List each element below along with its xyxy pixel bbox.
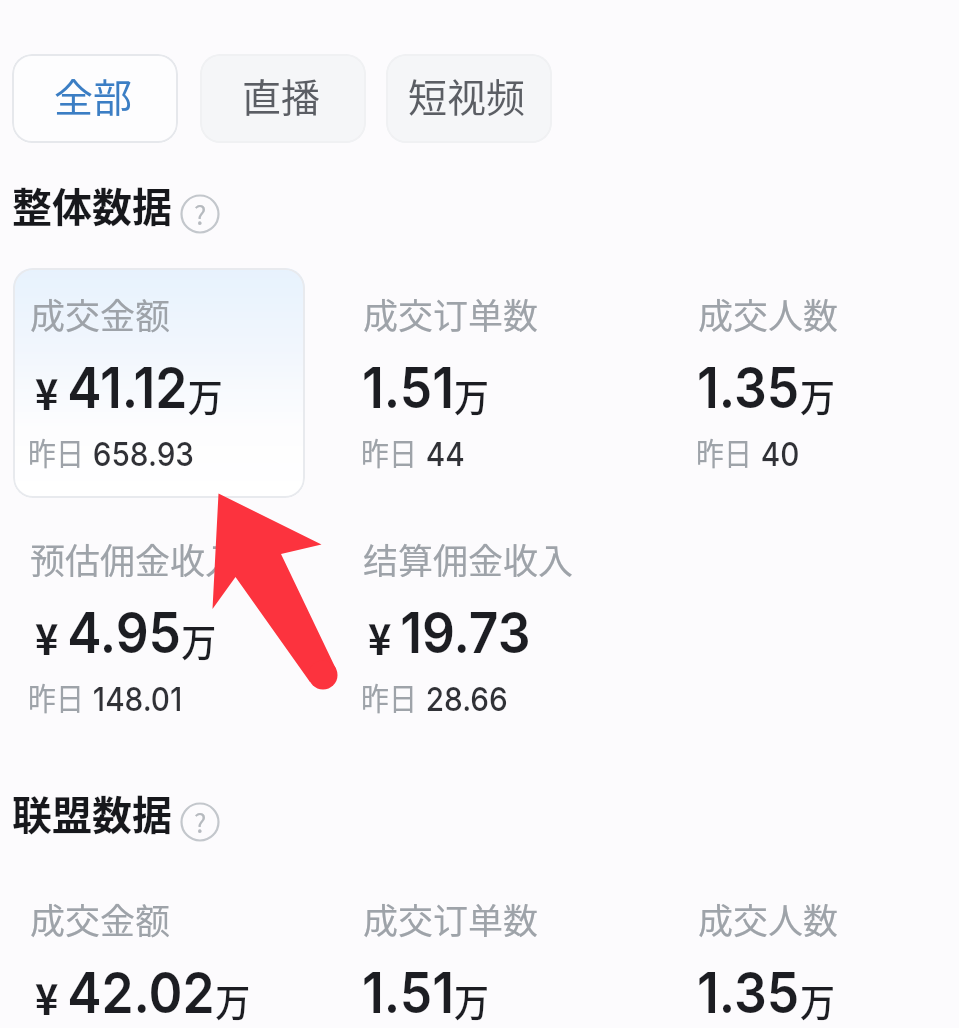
staticText: 昨日 <box>696 429 752 474</box>
button[interactable] <box>12 881 332 991</box>
button[interactable] <box>13 268 305 498</box>
button[interactable] <box>345 881 665 991</box>
button[interactable] <box>12 521 332 711</box>
staticText: 148.01 <box>93 679 183 719</box>
staticText: ¥ <box>35 605 59 667</box>
staticText: 成交人数 <box>698 893 839 944</box>
staticText: 万 <box>181 612 217 667</box>
staticText: 直播 <box>242 67 321 123</box>
staticText: 万 <box>454 972 490 1027</box>
staticText: 联盟数据 <box>12 784 172 842</box>
button[interactable] <box>345 521 665 711</box>
staticText: 成交订单数 <box>363 288 539 339</box>
staticText: 万 <box>454 367 490 422</box>
staticText: 昨日 <box>361 674 417 719</box>
staticText: 1.35 <box>697 959 800 1027</box>
staticText: 昨日 <box>361 429 417 474</box>
staticText: 4.95 <box>67 599 181 667</box>
staticText: 成交订单数 <box>363 893 539 944</box>
staticText: 整体数据 <box>12 176 172 234</box>
staticText: 成交金额 <box>30 893 171 944</box>
staticText: 658.93 <box>93 434 194 474</box>
staticText: 预估佣金收入 <box>30 533 241 584</box>
staticText: ? <box>194 803 207 841</box>
staticText: 28.66 <box>426 679 509 719</box>
button[interactable]: 整体数据 <box>12 176 172 234</box>
staticText: 44 <box>426 434 465 474</box>
staticText: 1.35 <box>697 354 800 422</box>
staticText: ? <box>194 195 207 233</box>
button[interactable] <box>12 276 332 466</box>
staticText: 万 <box>188 367 224 422</box>
staticText: 全部 <box>54 67 133 123</box>
staticText: 结算佣金收入 <box>363 533 574 584</box>
staticText: 万 <box>800 972 836 1027</box>
button[interactable]: 联盟数据 <box>12 784 172 842</box>
staticText: ¥ <box>35 965 59 1027</box>
staticText: 万 <box>215 972 251 1027</box>
button[interactable] <box>680 881 959 991</box>
staticText: ¥ <box>35 360 59 422</box>
staticText: 万 <box>800 367 836 422</box>
staticText: 42.02 <box>67 959 215 1027</box>
staticText: ¥ <box>368 605 392 667</box>
staticText: 19.73 <box>400 599 531 667</box>
staticText: 1.51 <box>362 354 454 422</box>
button[interactable]: 联盟数据说明 <box>180 802 220 842</box>
button[interactable] <box>345 276 665 466</box>
staticText: 41.12 <box>67 354 188 422</box>
staticText: 短视频 <box>408 67 526 123</box>
staticText: 昨日 <box>28 674 84 719</box>
staticText: 成交人数 <box>698 288 839 339</box>
staticText: 昨日 <box>28 429 84 474</box>
button[interactable]: 全部 <box>12 54 178 143</box>
staticText: 成交金额 <box>30 288 171 339</box>
staticText: 1.51 <box>362 959 454 1027</box>
button[interactable]: 整体数据说明 <box>180 194 220 234</box>
button[interactable]: 短视频 <box>386 54 552 143</box>
button[interactable] <box>680 276 959 466</box>
staticText: 40 <box>761 434 799 474</box>
button[interactable]: 直播 <box>200 54 366 143</box>
